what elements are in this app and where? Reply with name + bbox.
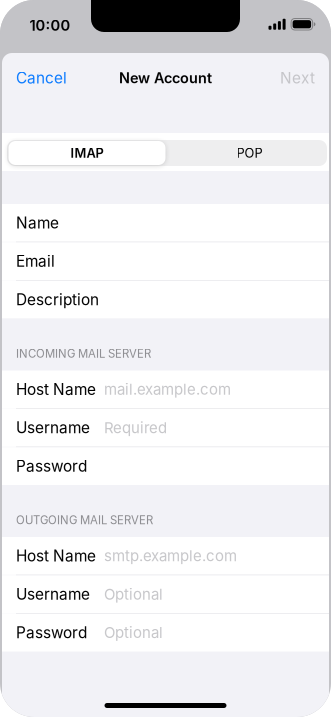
button[interactable]: Username xyxy=(2,409,329,447)
staticText: POP xyxy=(236,145,262,161)
staticText: Email xyxy=(16,252,55,271)
button[interactable]: Password xyxy=(2,614,329,651)
staticText: Optional xyxy=(104,624,163,642)
staticText: Username xyxy=(16,418,90,437)
button[interactable]: Cancel xyxy=(2,56,77,100)
staticText: Next xyxy=(280,69,315,87)
staticText: Username xyxy=(16,585,90,604)
staticText: Cancel xyxy=(16,69,67,87)
button[interactable]: IMAP xyxy=(8,141,165,165)
staticText: Password xyxy=(16,623,87,642)
staticText: Required xyxy=(104,419,167,437)
button[interactable]: Next xyxy=(270,56,329,100)
staticText: Name xyxy=(16,214,59,232)
staticText: Optional xyxy=(104,585,163,603)
staticText: mail.example.com xyxy=(104,380,231,398)
staticText: INCOMING MAIL SERVER xyxy=(16,347,151,360)
staticText: 10:00 xyxy=(29,16,70,34)
button[interactable]: Password xyxy=(2,447,329,485)
staticText: IMAP xyxy=(70,145,103,161)
staticText: OUTGOING MAIL SERVER xyxy=(16,513,153,527)
button[interactable]: POP xyxy=(170,140,328,166)
staticText: Host Name xyxy=(16,380,96,399)
button[interactable]: Name xyxy=(2,204,329,242)
button[interactable]: Host Name xyxy=(2,537,329,575)
staticText: Description xyxy=(16,290,99,309)
button[interactable]: Email xyxy=(2,242,329,280)
button[interactable]: Username xyxy=(2,575,329,613)
staticText: smtp.example.com xyxy=(104,547,237,565)
staticText: New Account xyxy=(119,69,212,87)
button[interactable]: Host Name xyxy=(2,370,329,408)
button[interactable]: Description xyxy=(2,281,329,318)
staticText: Password xyxy=(16,457,87,475)
staticText: Host Name xyxy=(16,547,96,565)
